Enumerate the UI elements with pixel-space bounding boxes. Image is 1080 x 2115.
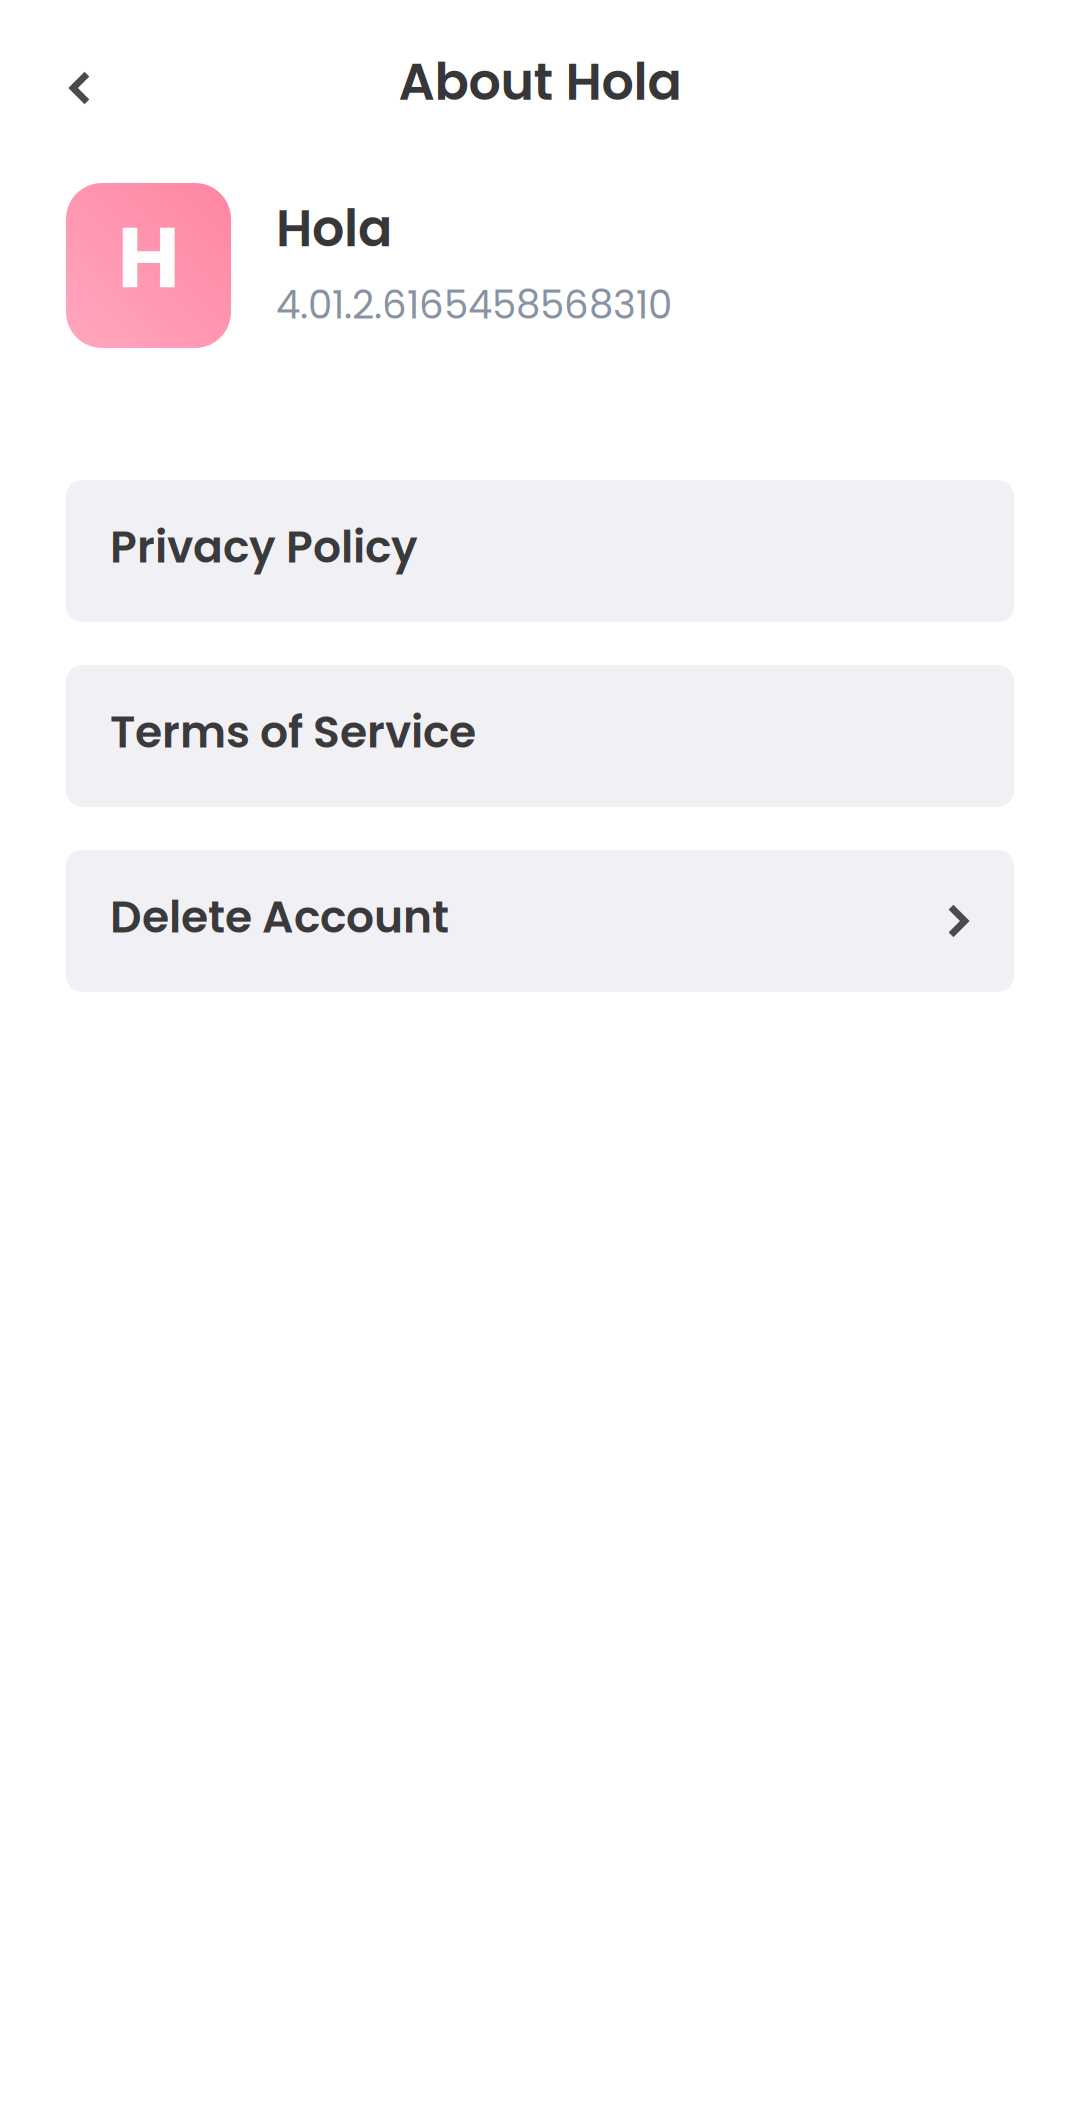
staticText: Hola xyxy=(276,193,392,264)
button[interactable]: Delete Account xyxy=(66,850,1014,992)
button[interactable]: Back xyxy=(38,46,122,130)
staticText: Terms of Service xyxy=(110,701,476,763)
staticText: Privacy Policy xyxy=(110,516,418,578)
staticText: 4.01.2.6165458568310 xyxy=(276,278,672,332)
button[interactable]: Privacy Policy xyxy=(66,480,1014,622)
staticText: H xyxy=(117,198,179,317)
staticText: Delete Account xyxy=(110,886,449,948)
button[interactable]: Terms of Service xyxy=(66,665,1014,807)
staticText: About Hola xyxy=(398,46,681,117)
